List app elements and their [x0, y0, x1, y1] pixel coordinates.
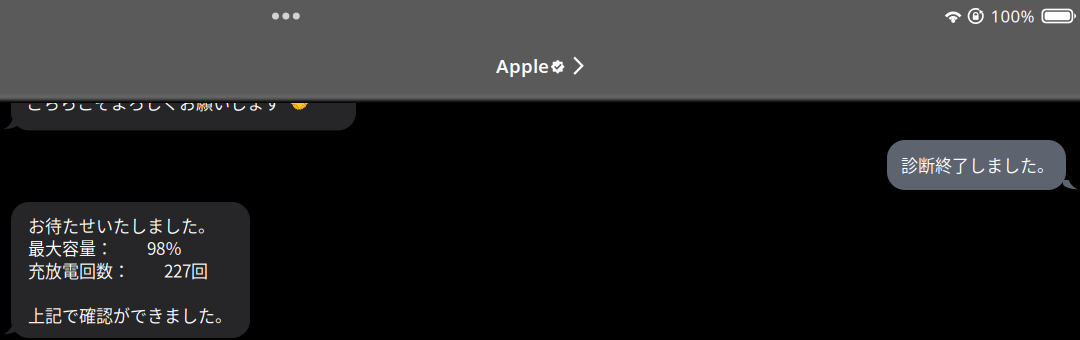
staticText: 診断終了しました。: [901, 152, 1054, 177]
button[interactable]: 診断終了しました。: [887, 140, 1066, 190]
staticText: 上記で確認ができました。: [28, 302, 232, 327]
staticText: お待たせいたしました。: [28, 213, 215, 237]
staticText: こちらこそよろしくお願いします 🤝: [26, 90, 310, 114]
button[interactable]: お待たせいたしました。: [11, 202, 250, 338]
button[interactable]: こちらこそよろしくお願いします 🤝: [11, 79, 356, 130]
staticText: 最大容量： 98％: [28, 235, 182, 260]
staticText: 充放電回数： 227回: [28, 258, 208, 282]
staticText: Apple: [496, 53, 549, 78]
button[interactable]: Apple: [496, 53, 584, 78]
staticText: 100%: [990, 5, 1034, 27]
